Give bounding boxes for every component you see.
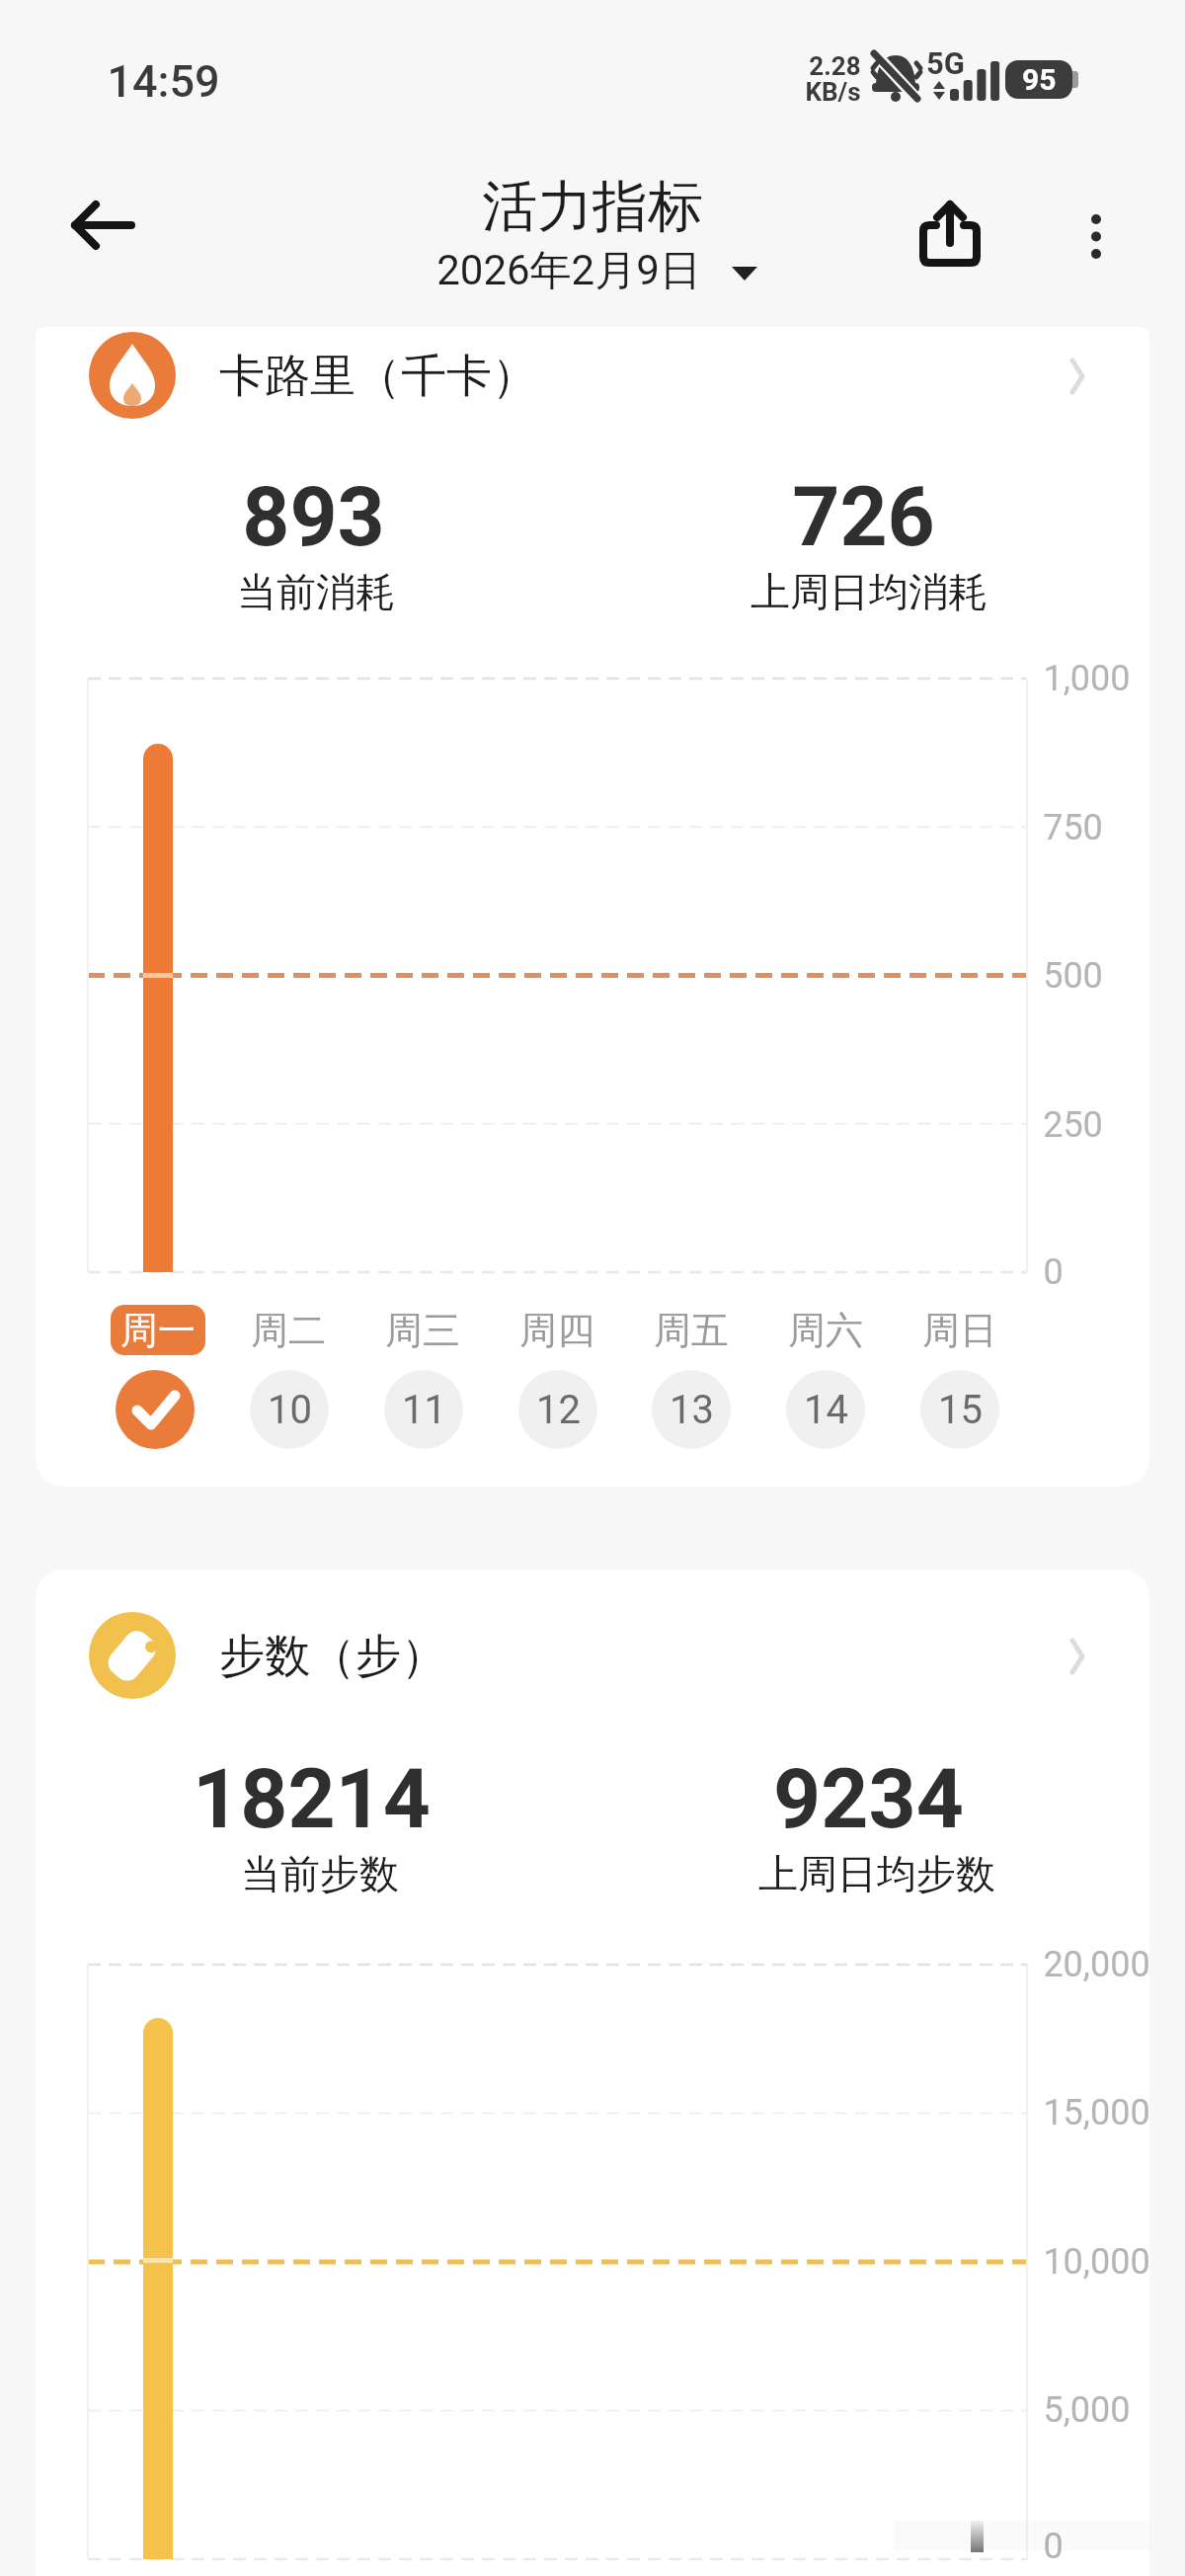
button[interactable] xyxy=(65,1612,1102,1699)
staticText: 活力指标 xyxy=(482,172,703,233)
button[interactable]: 周二 xyxy=(219,1305,357,1355)
button[interactable] xyxy=(912,194,987,273)
button[interactable] xyxy=(1066,1640,1090,1673)
button[interactable] xyxy=(65,332,1102,419)
staticText: 周二 xyxy=(251,1307,326,1354)
button[interactable]: 周四 xyxy=(488,1305,626,1355)
button[interactable] xyxy=(61,192,146,259)
staticText: 250 xyxy=(1043,1104,1103,1146)
button[interactable]: 周三 xyxy=(354,1305,492,1355)
staticText: 2026年2月9日 xyxy=(436,245,701,296)
staticText: 11 xyxy=(402,1387,446,1433)
button[interactable]: 10 xyxy=(250,1370,329,1449)
staticText: 9234 xyxy=(773,1750,964,1847)
staticText: 周五 xyxy=(654,1307,729,1354)
staticText: 上周日均消耗 xyxy=(750,567,987,616)
staticText: 500 xyxy=(1043,955,1103,997)
staticText: 1,000 xyxy=(1043,658,1131,699)
staticText: 5G xyxy=(926,45,965,81)
staticText: 18214 xyxy=(193,1750,431,1847)
staticText: 750 xyxy=(1043,807,1103,848)
button[interactable] xyxy=(1066,360,1090,393)
staticText: 893 xyxy=(242,468,385,565)
staticText: 周六 xyxy=(788,1307,863,1354)
staticText: 12 xyxy=(536,1387,581,1433)
staticText: 周四 xyxy=(519,1307,594,1354)
button[interactable] xyxy=(731,265,760,284)
staticText: 上周日均步数 xyxy=(758,1849,995,1898)
staticText: 20,000 xyxy=(1043,1944,1150,1985)
staticText: 15 xyxy=(938,1387,983,1433)
staticText: 周日 xyxy=(922,1307,997,1354)
button[interactable] xyxy=(1071,200,1121,275)
staticText: 10 xyxy=(268,1387,312,1433)
staticText: 0 xyxy=(1043,1251,1064,1293)
staticText: 13 xyxy=(670,1387,714,1433)
button[interactable]: 周一 xyxy=(111,1305,205,1355)
button[interactable]: 13 xyxy=(652,1370,731,1449)
staticText: 当前消耗 xyxy=(237,567,395,616)
button[interactable]: 14 xyxy=(786,1370,865,1449)
staticText: 步数（步） xyxy=(219,1628,446,1683)
button[interactable]: 11 xyxy=(384,1370,463,1449)
button[interactable]: 周日 xyxy=(891,1305,1029,1355)
staticText: 10,000 xyxy=(1043,2241,1150,2283)
button[interactable]: 12 xyxy=(518,1370,597,1449)
button[interactable]: 周五 xyxy=(622,1305,760,1355)
staticText: 726 xyxy=(792,468,935,565)
staticText: 当前步数 xyxy=(241,1849,399,1898)
button[interactable]: 周六 xyxy=(756,1305,895,1355)
staticText: 卡路里（千卡） xyxy=(219,348,537,403)
staticText: 0 xyxy=(1043,2526,1064,2567)
staticText: 14 xyxy=(804,1387,848,1433)
button[interactable] xyxy=(116,1370,195,1449)
staticText: 周一 xyxy=(120,1307,196,1354)
staticText: 2.28 xyxy=(809,51,861,81)
staticText: 14:59 xyxy=(107,55,220,105)
staticText: KB/s xyxy=(805,77,861,107)
staticText: 15,000 xyxy=(1043,2092,1150,2133)
staticText: 95 xyxy=(1022,62,1057,97)
staticText: 周三 xyxy=(385,1307,460,1354)
button[interactable]: 15 xyxy=(920,1370,999,1449)
staticText: 5,000 xyxy=(1043,2389,1131,2431)
